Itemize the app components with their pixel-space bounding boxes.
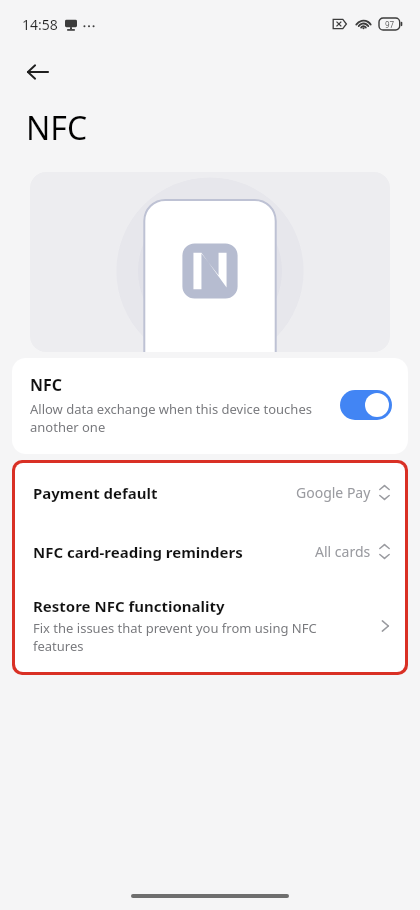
button[interactable]: Restore NFC functionality	[15, 581, 405, 672]
staticText: Google Pay	[296, 483, 371, 502]
staticText: NFC card-reading reminders	[33, 542, 315, 562]
staticText: Payment default	[33, 483, 296, 503]
button[interactable]: NFC	[12, 358, 408, 454]
button[interactable]: Back	[14, 48, 62, 96]
staticText: Restore NFC functionality	[33, 596, 225, 616]
staticText: Fix the issues that prevent you from usi…	[33, 619, 369, 655]
button[interactable]: NFC toggle	[340, 390, 392, 420]
staticText: NFC	[30, 374, 63, 396]
staticText: Allow data exchange when this device tou…	[30, 400, 328, 436]
staticText: 97	[385, 19, 395, 30]
button[interactable]: Payment default	[15, 463, 405, 522]
staticText: All cards	[315, 542, 371, 561]
button[interactable]: NFC card-reading reminders	[15, 522, 405, 581]
staticText: 14:58	[22, 15, 58, 34]
staticText: NFC	[26, 106, 88, 150]
